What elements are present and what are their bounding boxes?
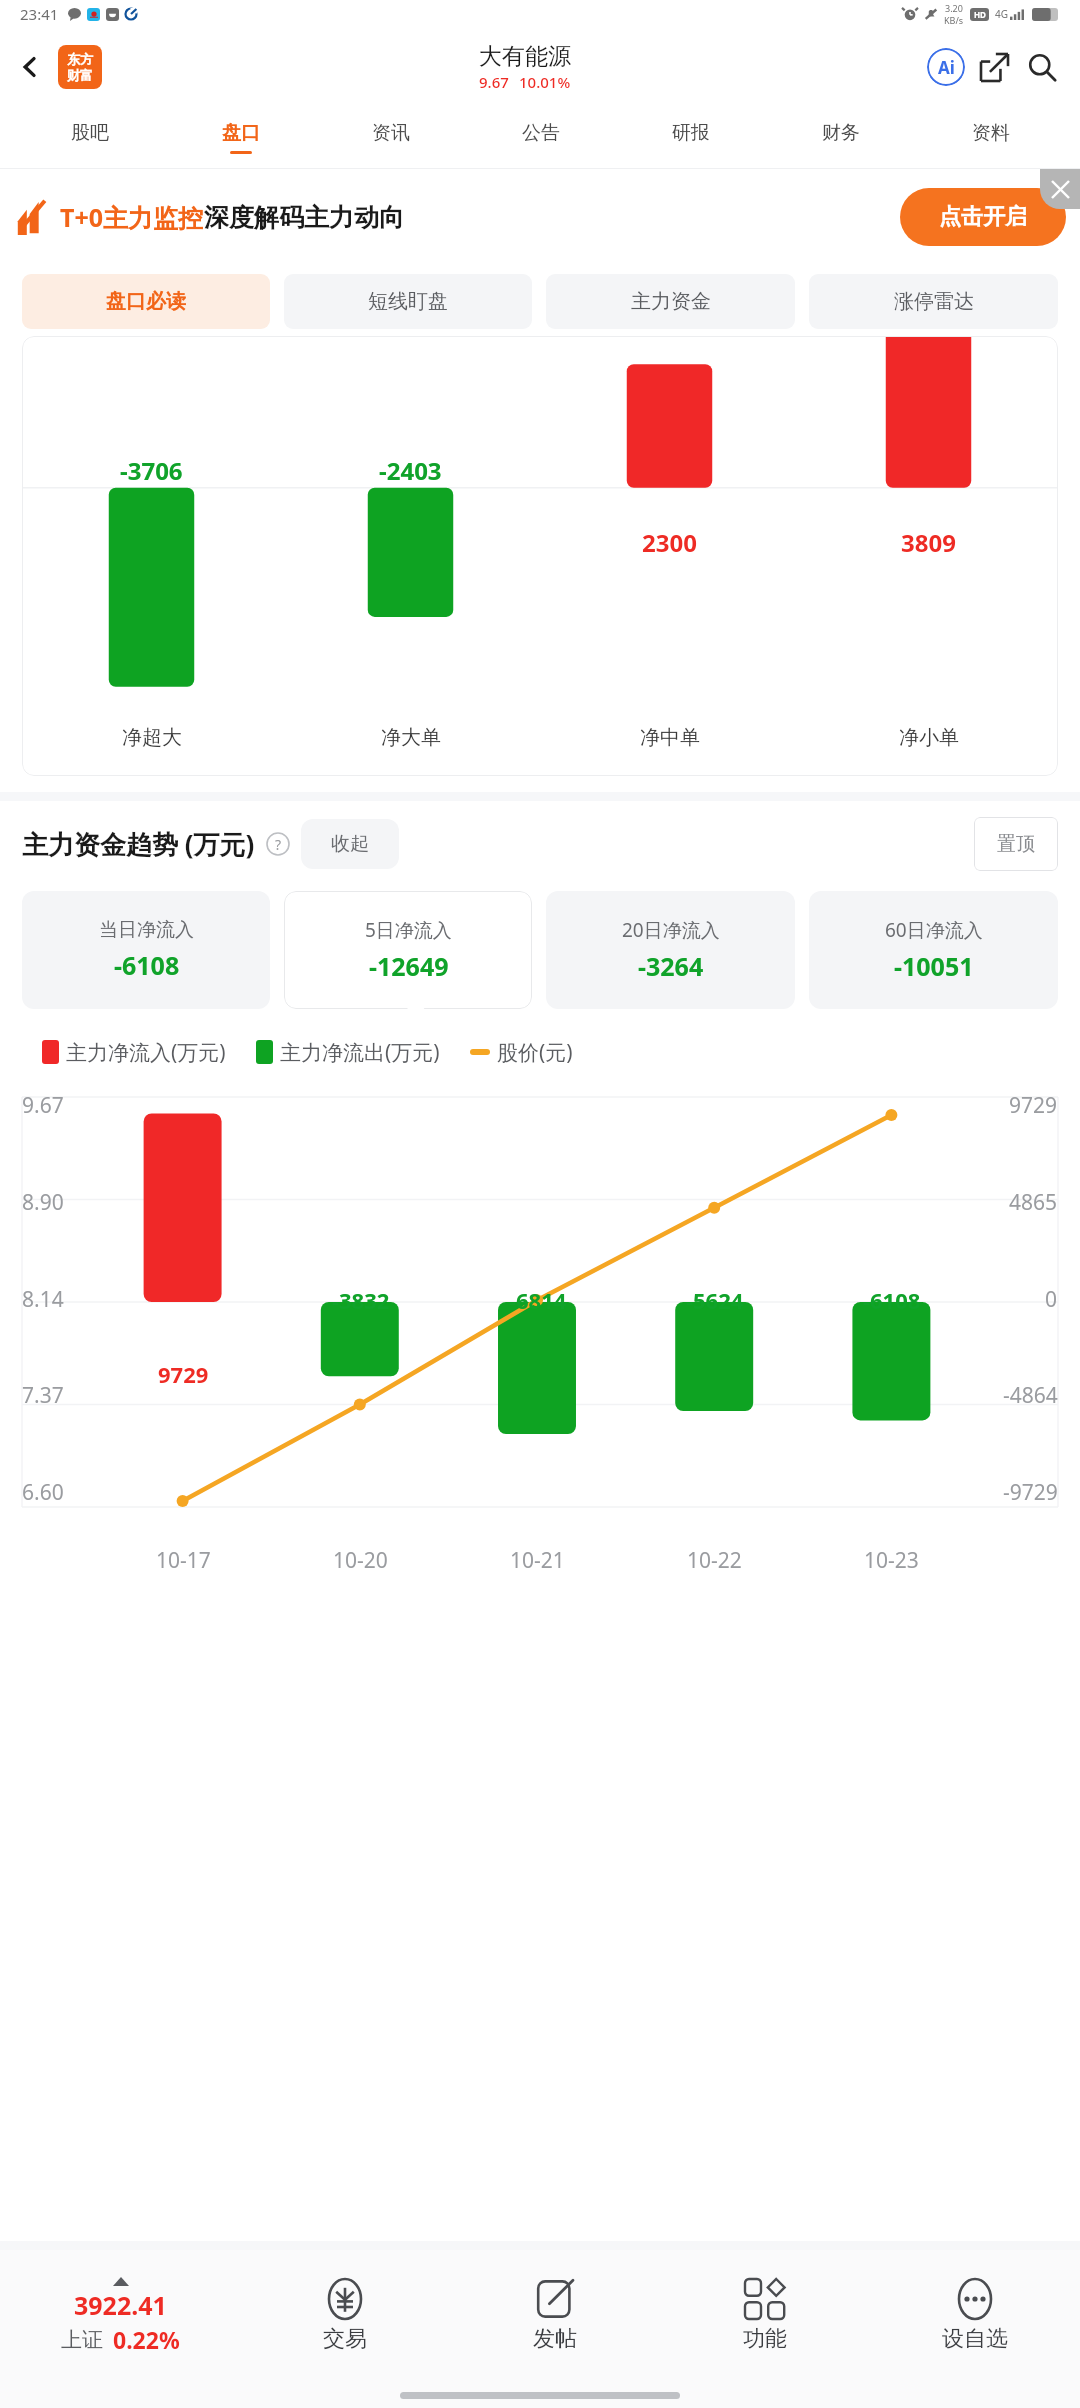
staticText: 上证	[61, 2327, 103, 2353]
staticText: 9729	[1009, 1091, 1058, 1120]
staticText: 盘口	[222, 121, 260, 145]
button[interactable]: East Money	[58, 45, 102, 89]
staticText: 资讯	[372, 121, 410, 145]
staticText: 主力资金	[631, 289, 711, 314]
button[interactable]: 盘口	[165, 106, 316, 168]
staticText: 交易	[323, 2325, 367, 2353]
button[interactable]: 3922.41	[0, 2250, 240, 2382]
staticText: 净超大	[122, 725, 182, 750]
staticText: KB/s	[944, 14, 964, 26]
staticText: Ai	[938, 56, 955, 79]
staticText: 盘口必读	[106, 289, 186, 314]
staticText: 收起	[331, 832, 369, 856]
button[interactable]: Search	[1018, 43, 1066, 91]
staticText: 发帖	[533, 2325, 577, 2353]
staticText: 8.14	[22, 1285, 64, 1314]
staticText: 9.67	[479, 72, 509, 92]
staticText: 点击开启	[939, 203, 1027, 231]
staticText: 净小单	[899, 725, 959, 750]
staticText: 研报	[672, 121, 710, 145]
staticText: -12649	[369, 949, 449, 983]
staticText: 10-22	[687, 1546, 742, 1575]
staticText: 4865	[1009, 1188, 1058, 1217]
staticText: -6108	[863, 1285, 921, 1315]
staticText: 3922.41	[74, 2288, 167, 2322]
staticText: -6108	[114, 948, 180, 982]
staticText: -3706	[120, 454, 183, 487]
staticText: 财务	[822, 121, 860, 145]
button[interactable]: 资讯	[316, 106, 466, 168]
staticText: 6.60	[22, 1478, 64, 1507]
staticText: -10051	[894, 949, 974, 983]
staticText: 主力净流出(万元)	[280, 1038, 440, 1067]
staticText: 10-23	[864, 1546, 919, 1575]
staticText: 功能	[743, 2325, 787, 2353]
staticText: T+0主力监控	[60, 200, 204, 234]
staticText: HD	[974, 9, 986, 20]
staticText: 当日净流入	[99, 918, 194, 942]
staticText: 9729	[158, 1359, 209, 1389]
staticText: 5日净流入	[365, 917, 452, 943]
button[interactable]: 收起	[301, 819, 399, 869]
button[interactable]: 发帖	[450, 2250, 660, 2382]
button[interactable]: Back	[8, 45, 52, 89]
staticText: 主力净流入(万元)	[66, 1038, 226, 1067]
button[interactable]: 涨停雷达	[809, 274, 1058, 329]
staticText: 0.22%	[113, 2324, 180, 2355]
button[interactable]: 主力资金	[546, 274, 795, 329]
staticText: 资料	[972, 121, 1010, 145]
button[interactable]: 设自选	[870, 2250, 1080, 2382]
staticText: -9729	[1003, 1478, 1058, 1507]
staticText: 净大单	[381, 725, 441, 750]
button[interactable]: 资料	[916, 106, 1066, 168]
staticText: 0	[1045, 1285, 1058, 1314]
staticText: -3264	[638, 949, 704, 983]
staticText: 净中单	[640, 725, 700, 750]
button[interactable]: AI	[922, 43, 970, 91]
staticText: 财富	[67, 67, 93, 83]
staticText: 4G	[995, 7, 1008, 21]
button[interactable]: 点击开启	[900, 188, 1066, 246]
staticText: 股价(元)	[497, 1038, 573, 1067]
button[interactable]: 当日净流入	[22, 891, 270, 1009]
button[interactable]: 公告	[466, 106, 616, 168]
button[interactable]: 5日净流入	[284, 891, 532, 1009]
button[interactable]: 置顶	[974, 817, 1058, 871]
button[interactable]: 60日净流入	[809, 891, 1058, 1009]
staticText: 东方	[67, 51, 93, 67]
button[interactable]: 股吧	[14, 106, 165, 168]
button[interactable]: Close	[1040, 169, 1080, 209]
staticText: -6814	[509, 1285, 567, 1315]
staticText: ?	[275, 835, 282, 854]
staticText: 3809	[901, 526, 956, 559]
button[interactable]: 研报	[616, 106, 766, 168]
staticText: -3832	[332, 1285, 390, 1315]
staticText: 10.01%	[519, 72, 571, 92]
button[interactable]: 财务	[766, 106, 916, 168]
staticText: 深度解码主力动向	[204, 202, 404, 233]
button[interactable]: 20日净流入	[546, 891, 795, 1009]
staticText: 60日净流入	[885, 917, 983, 943]
staticText: 7.37	[22, 1381, 64, 1410]
staticText: 股吧	[71, 121, 109, 145]
staticText: 10-17	[156, 1546, 211, 1575]
staticText: 2300	[642, 526, 697, 559]
button[interactable]: Share	[970, 43, 1018, 91]
staticText: -2403	[379, 454, 442, 487]
button[interactable]: 功能	[660, 2250, 870, 2382]
staticText: 8.90	[22, 1188, 64, 1217]
staticText: 置顶	[997, 832, 1035, 856]
button[interactable]: 交易	[240, 2250, 450, 2382]
button[interactable]: Help	[265, 831, 291, 857]
staticText: 主力资金趋势 (万元)	[22, 826, 255, 862]
button[interactable]: 短线盯盘	[284, 274, 532, 329]
staticText: 9.67	[22, 1091, 64, 1120]
staticText: 20日净流入	[622, 917, 720, 943]
staticText: 大有能源	[479, 42, 571, 71]
staticText: -4864	[1003, 1381, 1058, 1410]
staticText: 3.20	[945, 2, 963, 14]
staticText: 设自选	[942, 2325, 1008, 2353]
staticText: 公告	[522, 121, 560, 145]
button[interactable]: 盘口必读	[22, 274, 270, 329]
staticText: 10-20	[333, 1546, 388, 1575]
